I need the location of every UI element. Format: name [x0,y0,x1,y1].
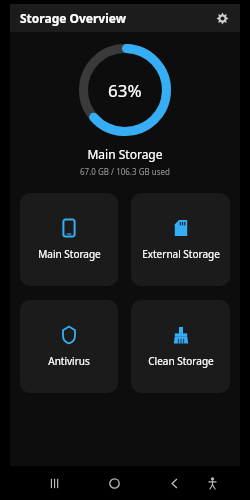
staticText: 63% [108,79,142,102]
staticText: Antivirus [48,354,90,368]
button[interactable]: Back [161,470,187,496]
button[interactable]: External Storage [131,193,230,286]
button[interactable]: Home [101,470,127,496]
staticText: 67.0 GB / 106.3 GB used [10,166,240,177]
button[interactable]: Accessibility [199,470,225,496]
staticText: Main Storage [38,247,101,261]
button[interactable]: Settings [212,8,232,28]
staticText: Main Storage [10,146,240,162]
staticText: External Storage [142,247,220,261]
button[interactable]: Clean Storage [131,300,230,393]
button[interactable]: Antivirus [20,300,118,393]
button[interactable]: Recents [41,470,67,496]
staticText: Clean Storage [148,354,214,368]
button[interactable]: Main Storage [20,193,118,286]
staticText: Storage Overview [20,10,127,26]
